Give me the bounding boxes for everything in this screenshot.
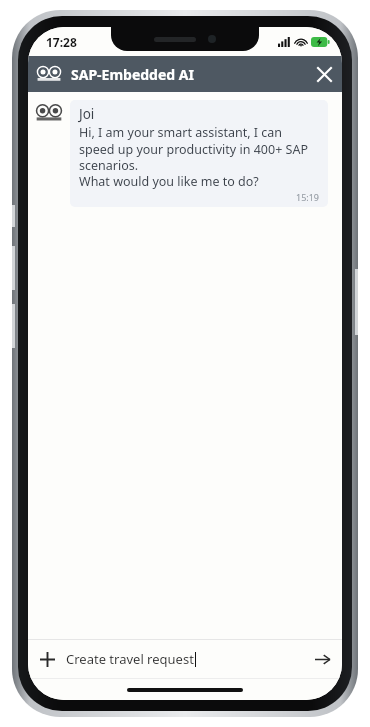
staticText: 17:28 xyxy=(46,34,77,50)
staticText: 15:19 xyxy=(79,191,319,203)
staticText: Create travel request xyxy=(66,650,194,668)
button[interactable]: Send xyxy=(302,640,342,678)
staticText: SAP-Embedded AI xyxy=(71,65,194,84)
button[interactable]: Close xyxy=(306,56,342,92)
button[interactable]: Add attachment xyxy=(28,640,66,678)
button[interactable]: Joi xyxy=(70,100,328,207)
staticText: Joi xyxy=(79,105,95,123)
staticText: What would you like me to do? xyxy=(79,173,259,190)
staticText: Hi, I am your smart assistant, I can spe… xyxy=(79,124,319,173)
